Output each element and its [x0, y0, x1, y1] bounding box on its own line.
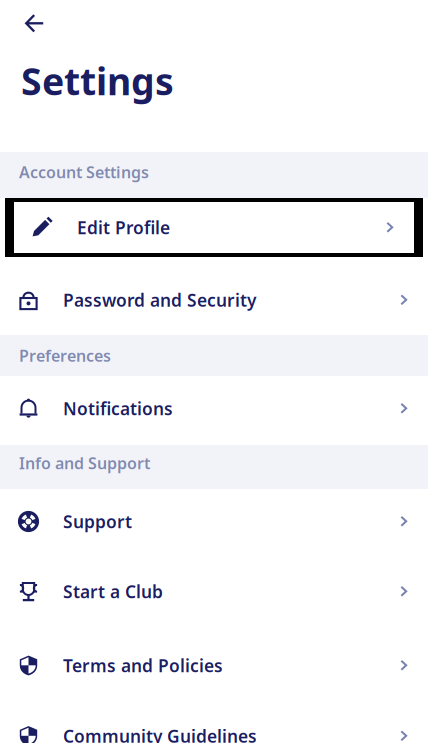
staticText: Terms and Policies	[63, 654, 223, 677]
button[interactable]: Password and Security	[0, 257, 428, 335]
button[interactable]: Back	[0, 7, 56, 40]
button[interactable]: Start a Club	[0, 556, 428, 627]
button[interactable]: Support	[0, 489, 428, 556]
staticText: Info and Support	[19, 452, 150, 474]
button[interactable]: Terms and Policies	[0, 627, 428, 700]
staticText: Support	[63, 510, 132, 533]
staticText: Notifications	[63, 397, 173, 420]
staticText: Edit Profile	[77, 216, 170, 239]
button[interactable]: Community Guidelines	[0, 700, 428, 743]
staticText: Settings	[21, 56, 174, 106]
button[interactable]: Edit Profile	[14, 202, 414, 253]
staticText: Start a Club	[63, 580, 163, 603]
staticText: Password and Security	[63, 288, 256, 311]
button[interactable]: Notifications	[0, 376, 428, 445]
staticText: Community Guidelines	[63, 724, 257, 743]
staticText: Preferences	[19, 345, 111, 366]
staticText: Account Settings	[19, 161, 149, 183]
